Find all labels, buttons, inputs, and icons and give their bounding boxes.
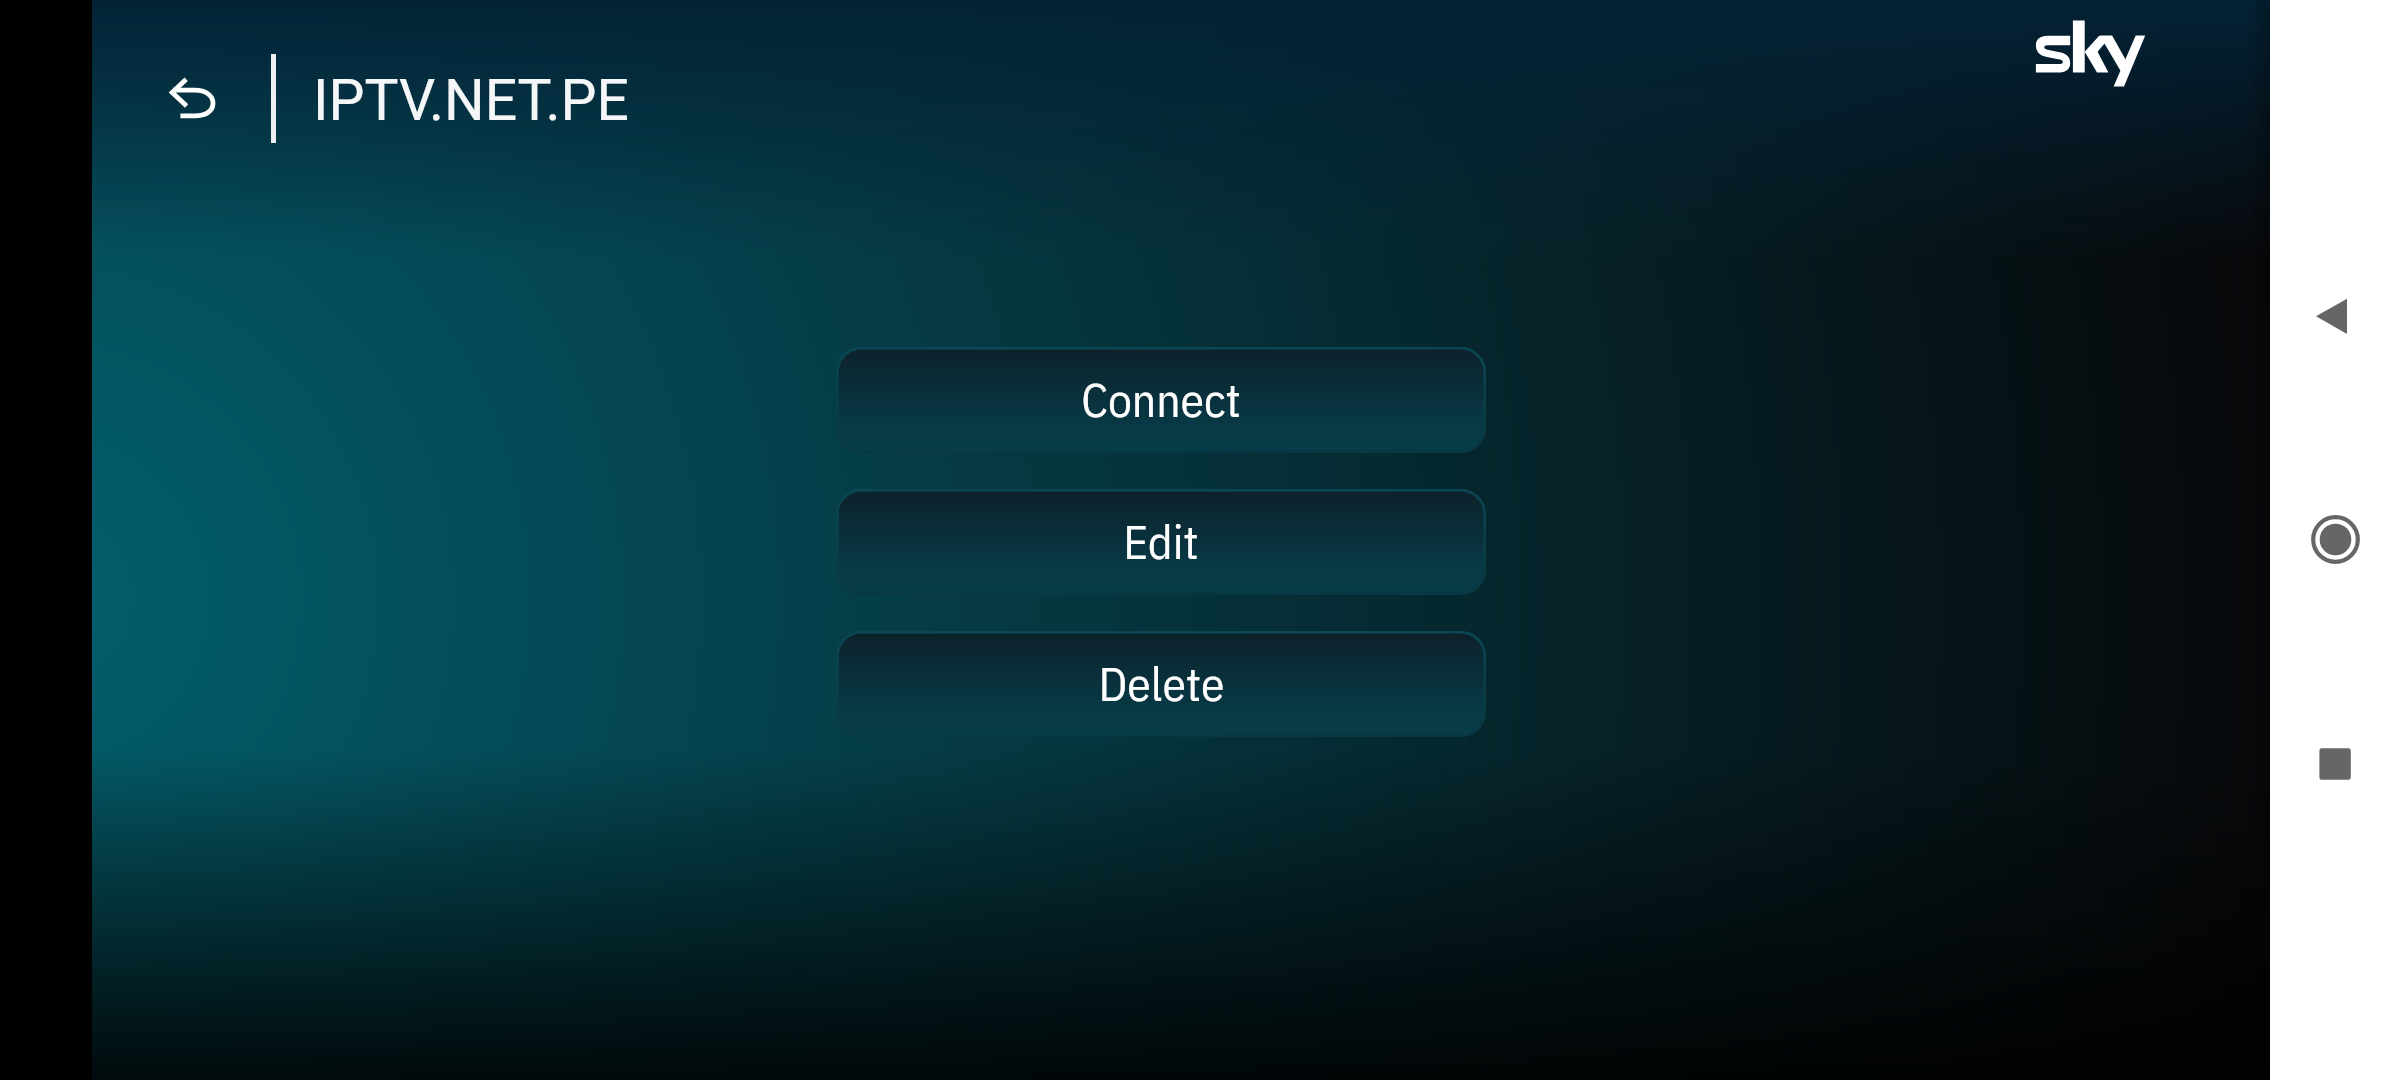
button[interactable]: Delete [836,631,1486,737]
button[interactable]: Back [158,56,248,146]
staticText: Connect [1081,368,1241,430]
staticText: Edit [1123,510,1199,572]
button[interactable]: Back [2286,272,2384,360]
button[interactable]: Connect [836,347,1486,453]
button[interactable]: Home [2286,495,2384,585]
staticText: IPTV.NET.PE [313,67,629,134]
button[interactable]: Edit [836,489,1486,595]
staticText: Delete [1098,652,1225,714]
button[interactable]: Recent apps [2286,720,2384,808]
button[interactable]: Sky [2035,20,2147,88]
